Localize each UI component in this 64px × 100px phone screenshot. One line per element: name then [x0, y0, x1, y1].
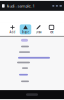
staticText: Add	[9, 30, 15, 34]
staticText: Shape	[21, 30, 29, 34]
button[interactable]: Add	[7, 24, 18, 34]
button[interactable]: Text	[46, 24, 57, 34]
staticText: Audi - sample_1	[7, 3, 35, 8]
button[interactable]: Shape	[20, 24, 31, 34]
button[interactable]: Draw	[33, 24, 44, 34]
button[interactable]: Document	[0, 2, 7, 10]
staticText: Draw	[35, 30, 41, 34]
staticText: Text	[49, 30, 53, 34]
